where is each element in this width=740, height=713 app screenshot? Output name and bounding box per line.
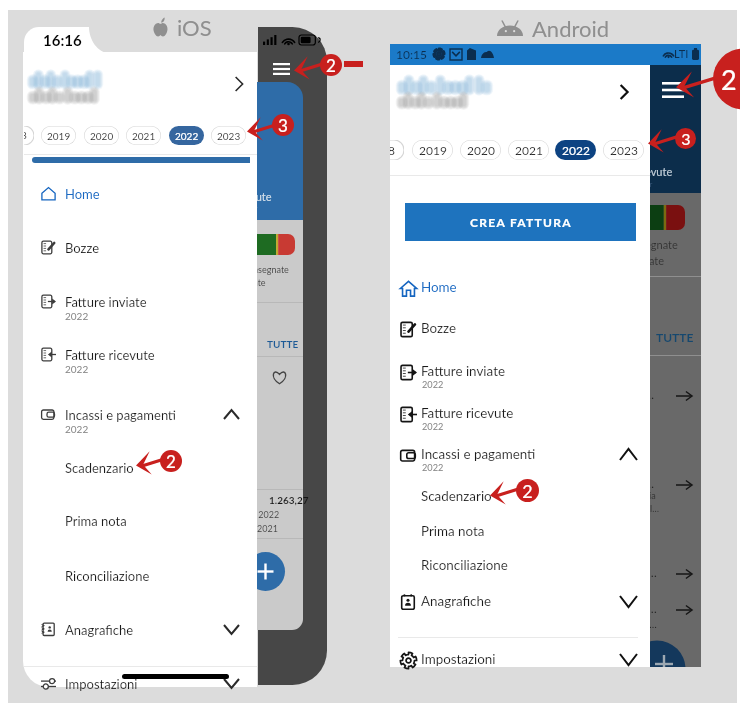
button[interactable]: Aggiungi xyxy=(645,639,701,667)
staticText: 2022 xyxy=(422,379,444,390)
staticText: Anagrafiche xyxy=(421,593,492,609)
button[interactable] xyxy=(390,269,650,307)
staticText: Bozze xyxy=(65,240,100,256)
staticText: 1.263,27 xyxy=(269,494,309,506)
button[interactable] xyxy=(390,547,650,585)
staticText: 8 xyxy=(24,129,27,141)
staticText: 2022 xyxy=(562,143,590,157)
staticText: Impostazioni xyxy=(421,651,496,667)
staticText: zia xyxy=(645,490,656,501)
button[interactable]: 2020 xyxy=(84,126,119,145)
button[interactable]: Menu xyxy=(658,76,688,104)
button[interactable]: 2022 xyxy=(169,126,204,145)
staticText: 2023 xyxy=(610,143,638,157)
staticText: 2021 xyxy=(515,143,543,157)
button[interactable]: 2019 xyxy=(41,126,76,145)
staticText: TUTTE xyxy=(656,330,694,344)
staticText: LTI xyxy=(674,47,689,60)
staticText: s… xyxy=(645,618,657,630)
button[interactable]: Menu xyxy=(268,58,294,80)
button[interactable] xyxy=(390,310,650,348)
staticText: 2022 xyxy=(175,130,199,142)
staticText: tate xyxy=(250,277,266,288)
staticText: … xyxy=(645,476,655,490)
button[interactable] xyxy=(390,513,650,551)
button[interactable] xyxy=(390,436,650,474)
staticText: e l… xyxy=(643,503,659,514)
staticText: Fatture ricevute xyxy=(421,405,514,421)
button[interactable]: 8 xyxy=(24,126,34,145)
staticText: 3 xyxy=(278,115,288,135)
staticText: 2022 xyxy=(65,423,89,435)
button[interactable] xyxy=(390,641,650,679)
button[interactable]: 2019 xyxy=(412,140,453,160)
button[interactable] xyxy=(24,555,257,597)
button[interactable] xyxy=(24,609,257,651)
button[interactable] xyxy=(24,334,257,376)
staticText: 2022 xyxy=(422,462,444,473)
staticText: egnate xyxy=(645,238,678,251)
staticText: Bozze xyxy=(421,320,457,336)
staticText: CREA FATTURA xyxy=(470,215,572,229)
staticText: 2022 xyxy=(65,363,89,375)
staticText: Incassi e pagamenti xyxy=(421,446,536,462)
button[interactable] xyxy=(24,500,257,542)
staticText: 2020 xyxy=(90,130,114,142)
staticText: onsegnate xyxy=(248,264,289,275)
button[interactable]: 2023 xyxy=(603,140,644,160)
staticText: l… xyxy=(645,601,657,615)
button[interactable] xyxy=(24,394,257,436)
staticText: Prima nota xyxy=(421,523,485,539)
staticText: Impostazioni xyxy=(65,676,138,692)
button[interactable]: 8 xyxy=(390,140,404,160)
staticText: Riconciliazione xyxy=(65,568,150,584)
staticText: tre 2022 xyxy=(245,509,280,520)
staticText: 10:15 xyxy=(396,47,427,61)
button[interactable]: 2020 xyxy=(460,140,501,160)
button[interactable] xyxy=(24,227,257,269)
staticText: 2020 xyxy=(467,143,495,157)
button[interactable] xyxy=(390,395,650,433)
staticText: iOS xyxy=(177,14,212,40)
button[interactable]: 2023 xyxy=(211,126,246,145)
staticText: TUTTE xyxy=(267,338,299,350)
button[interactable] xyxy=(24,281,257,323)
staticText: Home xyxy=(421,279,457,295)
button[interactable]: 2021 xyxy=(126,126,161,145)
staticText: Fatture inviate xyxy=(421,363,505,379)
button[interactable]: Apri xyxy=(613,80,635,104)
staticText: Incassi e pagamenti xyxy=(65,407,177,423)
button[interactable]: Aggiungi xyxy=(246,552,286,592)
staticText: 2019 xyxy=(419,143,447,157)
button[interactable] xyxy=(24,447,257,489)
staticText: 3 xyxy=(681,129,691,148)
staticText: 16:16 xyxy=(43,31,82,49)
staticText: 2 xyxy=(721,63,737,95)
staticText: 2021 xyxy=(132,130,156,142)
button[interactable] xyxy=(24,663,257,705)
staticText: … xyxy=(645,387,655,401)
staticText: evute xyxy=(645,165,673,178)
button[interactable] xyxy=(390,583,650,621)
staticText: 2 xyxy=(522,480,533,502)
staticText: tate xyxy=(645,254,665,267)
button[interactable] xyxy=(390,478,650,516)
staticText: or xyxy=(250,203,258,213)
staticText: e 2021 xyxy=(250,523,278,534)
button[interactable] xyxy=(24,173,257,215)
staticText: 2 xyxy=(326,55,336,75)
button[interactable]: 2021 xyxy=(508,140,549,160)
button[interactable]: Apri xyxy=(228,72,250,96)
staticText: Prima nota xyxy=(65,513,127,529)
staticText: 2022 xyxy=(422,421,444,432)
button[interactable]: CREA FATTURA xyxy=(405,203,636,241)
staticText: Home xyxy=(65,186,100,202)
staticText: Riconciliazione xyxy=(421,557,508,573)
button[interactable] xyxy=(390,353,650,391)
staticText: 2 xyxy=(166,451,176,471)
staticText: Fatture inviate xyxy=(65,294,147,310)
button[interactable]: 2022 xyxy=(555,140,596,160)
staticText: Scadenzario xyxy=(421,488,492,504)
staticText: Fatture ricevute xyxy=(65,347,155,363)
staticText: 2023 xyxy=(217,130,241,142)
